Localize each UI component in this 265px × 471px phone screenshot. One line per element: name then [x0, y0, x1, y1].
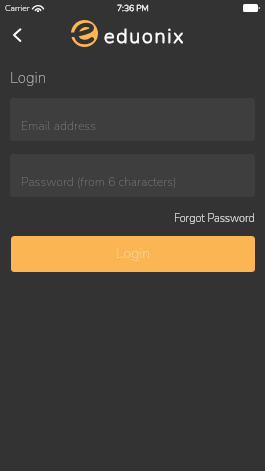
button[interactable]: Forgot Password: [169, 207, 260, 230]
button[interactable]: Password (from 6 characters): [10, 154, 255, 197]
button[interactable]: Login: [11, 236, 255, 272]
staticText: Carrier: [5, 2, 30, 14]
staticText: 7:36 PM: [117, 2, 149, 14]
staticText: Password (from 6 characters): [21, 174, 177, 191]
staticText: Email address: [21, 118, 97, 135]
button[interactable]: Email address: [10, 98, 255, 141]
staticText: Login: [116, 244, 151, 264]
staticText: Login: [10, 68, 46, 88]
staticText: Forgot Password: [174, 211, 255, 226]
button[interactable]: Back: [6, 24, 28, 46]
staticText: eduonix: [104, 23, 186, 50]
